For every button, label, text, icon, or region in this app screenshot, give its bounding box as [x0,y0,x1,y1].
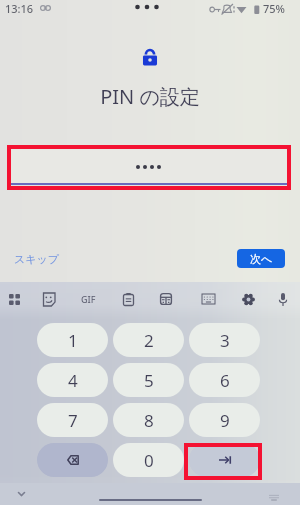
staticText: 9 [220,409,230,432]
button[interactable]: GIF [76,287,100,311]
button[interactable]: 4 [37,363,108,397]
button[interactable]: Enter [189,443,260,477]
button[interactable]: Stickers [36,287,60,311]
staticText: スキップ [14,252,60,266]
staticText: 4 [68,369,78,392]
button[interactable] [9,147,289,185]
button[interactable]: Hide keyboard [12,485,30,503]
button[interactable]: 2 [113,323,184,357]
button[interactable]: 1 [37,323,108,357]
staticText: 2 [144,329,154,352]
button[interactable]: Translate [154,287,178,311]
button[interactable]: 8 [113,403,184,437]
button[interactable]: 3 [189,323,260,357]
button[interactable]: Apps [2,287,26,311]
staticText: 1 [68,329,78,352]
button[interactable]: Delete [37,443,108,477]
staticText: 7 [68,409,78,432]
button[interactable]: Switch keyboard [265,488,283,505]
button[interactable]: 7 [37,403,108,437]
staticText: 6 [220,369,230,392]
staticText: PIN の設定 [100,83,200,110]
button[interactable]: 次へ [237,249,285,268]
staticText: 0 [144,449,154,472]
button[interactable]: 0 [113,443,184,477]
staticText: 13:16 [5,1,34,16]
button[interactable]: Keyboard [196,287,220,311]
staticText: GIF [81,293,96,305]
button[interactable]: 9 [189,403,260,437]
button[interactable]: Clipboard [116,287,140,311]
staticText: 3 [220,329,230,352]
button[interactable]: 5 [113,363,184,397]
button[interactable]: Settings [236,287,260,311]
button[interactable]: スキップ [10,248,64,270]
staticText: 75% [263,1,285,16]
staticText: 8 [144,409,154,432]
button[interactable]: 6 [189,363,260,397]
staticText: 5 [144,369,154,392]
staticText: 次へ [250,252,273,266]
button[interactable]: Voice [271,287,295,311]
